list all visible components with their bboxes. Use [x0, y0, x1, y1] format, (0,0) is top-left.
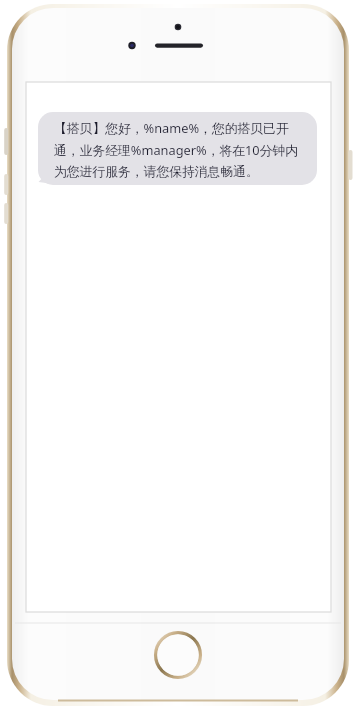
staticText: 【搭贝】您好，%name%，您的搭贝已开通，业务经理%manager%，将在10…: [54, 119, 304, 180]
button[interactable]: SMS message preview: [38, 112, 317, 185]
